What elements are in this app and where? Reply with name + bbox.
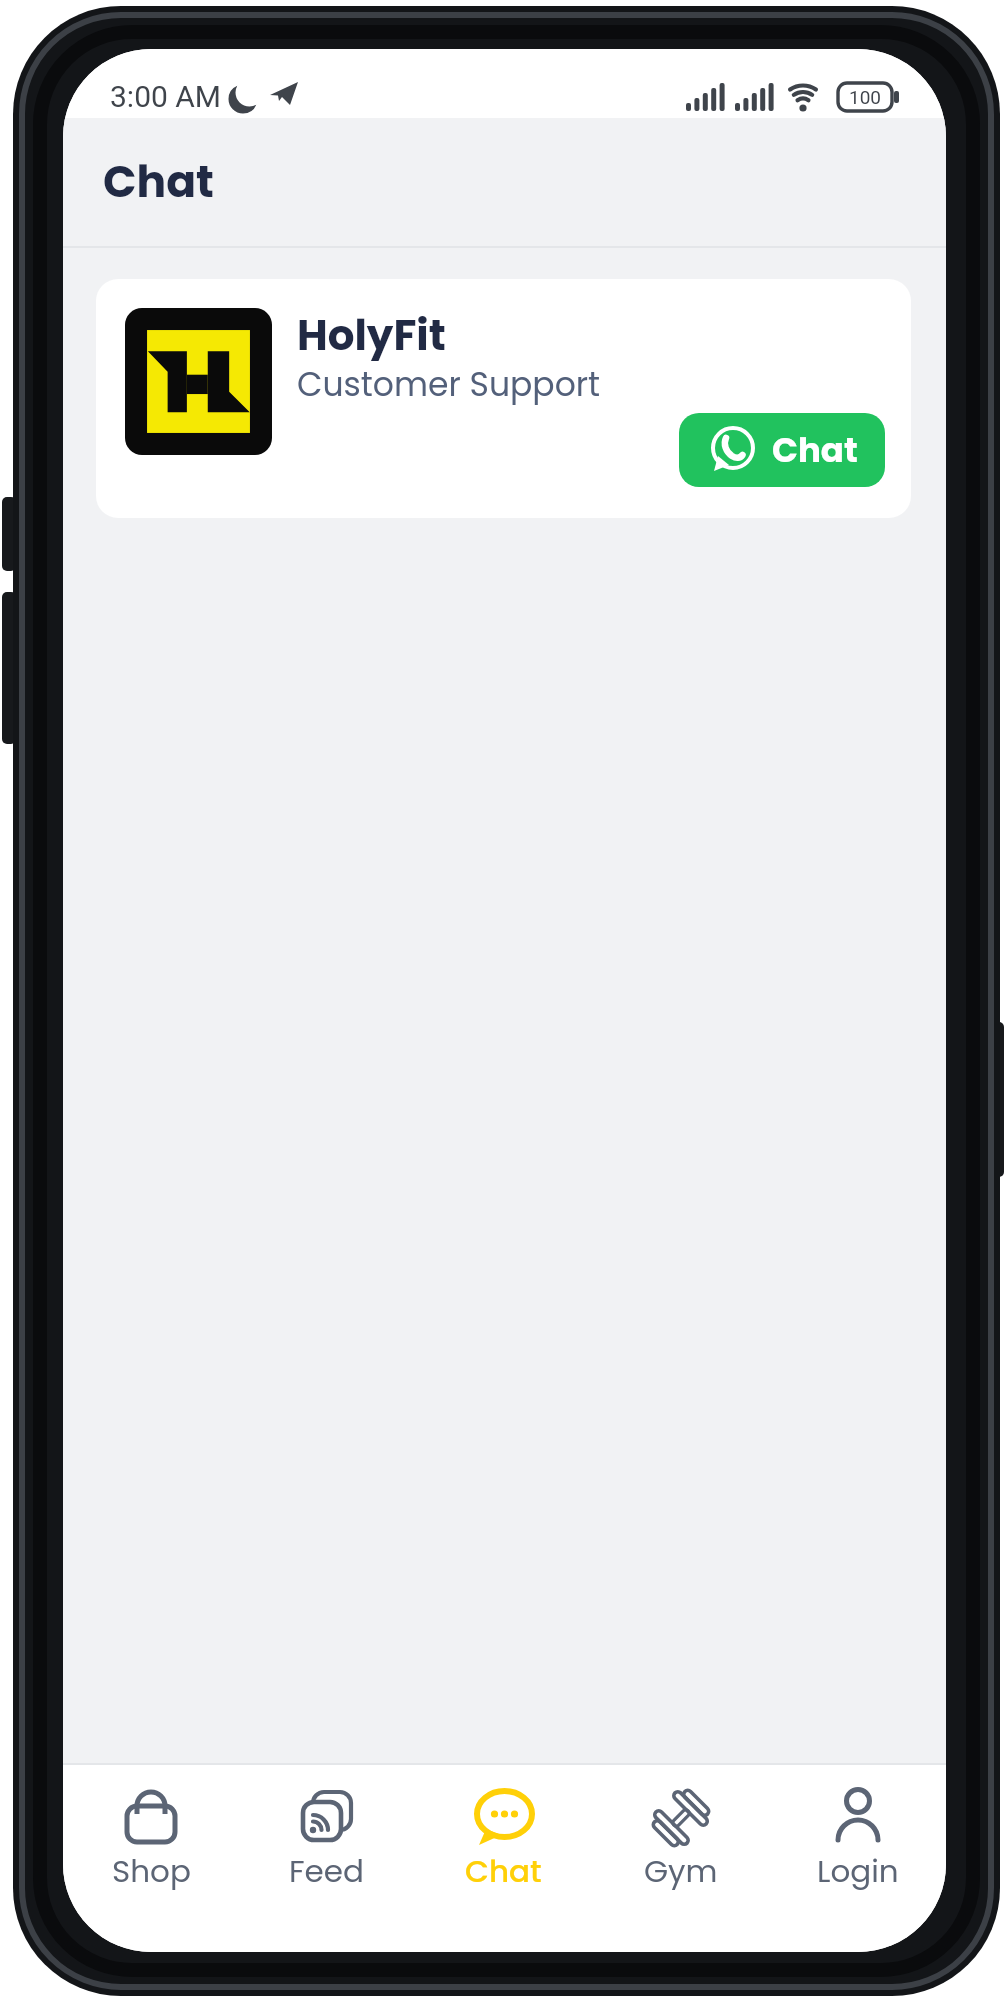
staticText: 3:00 AM bbox=[110, 79, 222, 114]
staticText: HolyFit bbox=[297, 306, 446, 365]
button[interactable]: Feed bbox=[239, 1787, 415, 1892]
staticText: Feed bbox=[289, 1849, 365, 1892]
button[interactable]: Login bbox=[769, 1787, 946, 1892]
button[interactable]: Chat bbox=[415, 1787, 592, 1892]
button[interactable]: Gym bbox=[592, 1787, 769, 1892]
staticText: Chat bbox=[103, 151, 214, 213]
staticText: Login bbox=[817, 1849, 899, 1892]
staticText: Chat bbox=[772, 426, 858, 474]
staticText: Chat bbox=[465, 1849, 542, 1892]
staticText: Customer Support bbox=[297, 361, 601, 407]
staticText: Shop bbox=[112, 1849, 191, 1892]
button[interactable]: Chat bbox=[679, 413, 885, 487]
button[interactable]: Shop bbox=[63, 1787, 239, 1892]
staticText: Gym bbox=[644, 1849, 718, 1892]
staticText: 100 bbox=[849, 86, 882, 108]
button[interactable]: HolyFit bbox=[96, 279, 911, 518]
